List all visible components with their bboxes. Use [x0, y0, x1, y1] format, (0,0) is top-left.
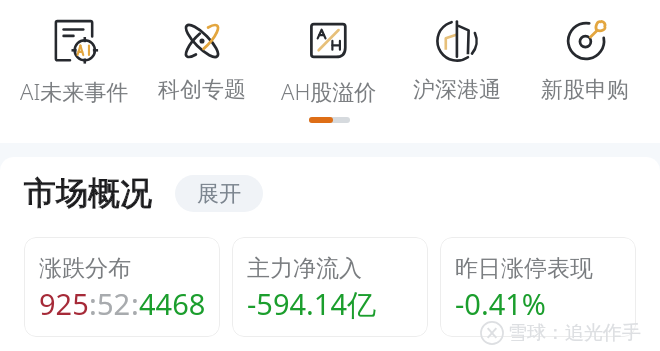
staticText: : — [131, 284, 139, 323]
other: 新股申购 — [563, 19, 607, 63]
staticText: 沪深港通 — [413, 76, 501, 104]
button[interactable]: 科创专题 — [138, 0, 265, 104]
button[interactable]: AI未来事件 — [11, 0, 138, 106]
button[interactable]: 涨跌分布 — [24, 237, 220, 337]
button[interactable]: 昨日涨停表现 — [440, 237, 636, 337]
button[interactable]: 新股申购 — [521, 0, 649, 104]
staticText: 昨日涨停表现 — [455, 254, 593, 283]
other: 沪深港通 — [435, 19, 479, 63]
staticText: 涨跌分布 — [39, 254, 131, 283]
staticText: 雪球：追光作手 — [508, 321, 641, 345]
staticText: -594.14亿 — [247, 284, 377, 324]
button[interactable]: 主力净流入 — [232, 237, 428, 337]
staticText: 展开 — [197, 180, 241, 208]
other: AH股溢价 — [307, 19, 351, 63]
staticText: 市场概况 — [24, 173, 152, 213]
staticText: 科创专题 — [158, 76, 246, 104]
staticText: 925 — [39, 284, 89, 323]
staticText: 市场概况 — [24, 173, 152, 213]
other: AI未来事件 — [55, 20, 99, 64]
staticText: -0.41% — [455, 284, 546, 323]
button[interactable]: AH股溢价 — [265, 0, 393, 106]
staticText: 4468 — [139, 284, 206, 323]
staticText: 主力净流入 — [247, 254, 362, 283]
other: 科创专题 — [180, 19, 224, 63]
staticText: AI未来事件 — [20, 76, 129, 106]
staticText: AH股溢价 — [281, 76, 377, 106]
button[interactable]: 展开 — [175, 175, 263, 212]
staticText: 52 — [97, 284, 131, 323]
button[interactable]: 沪深港通 — [393, 0, 521, 104]
staticText: 新股申购 — [541, 76, 629, 104]
staticText: : — [89, 284, 97, 323]
